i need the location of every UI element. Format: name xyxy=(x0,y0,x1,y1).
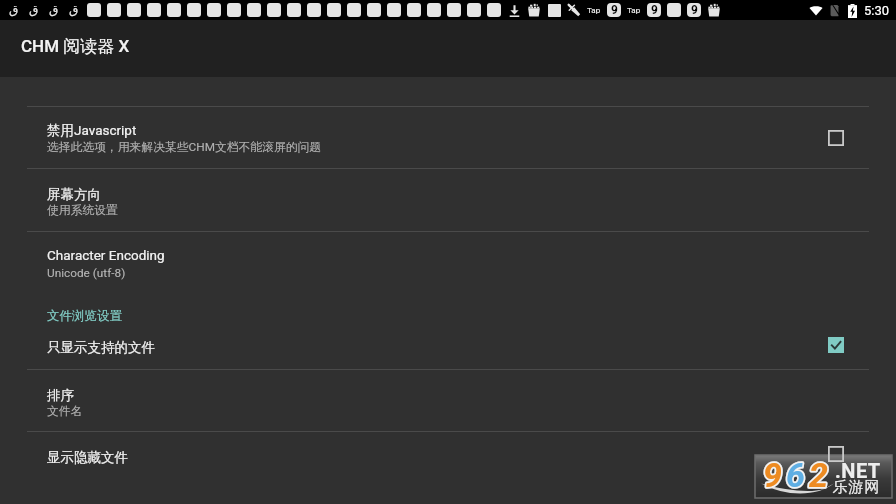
staticText: 2 xyxy=(809,455,828,495)
staticText: ق xyxy=(69,3,79,17)
staticText: 9 xyxy=(763,455,782,495)
staticText: Unicode (utf-8) xyxy=(47,266,126,280)
button[interactable]: 显示隐藏文件 xyxy=(0,432,896,482)
staticText: 选择此选项，用来解决某些CHM文档不能滚屏的问题 xyxy=(47,140,322,155)
button[interactable]: 只显示支持的文件 xyxy=(828,337,844,353)
button[interactable]: 排序 xyxy=(0,370,896,431)
staticText: Tap xyxy=(627,6,641,15)
staticText: ق xyxy=(49,3,59,17)
button[interactable]: 只显示支持的文件 xyxy=(0,331,896,369)
button[interactable]: 屏幕方向 xyxy=(0,169,896,231)
button[interactable]: Character Encoding xyxy=(0,232,896,291)
staticText: ق xyxy=(29,3,39,17)
staticText: 9 xyxy=(611,3,618,17)
staticText: 显示隐藏文件 xyxy=(47,449,128,466)
staticText: CHM 阅读器 X xyxy=(21,36,130,57)
staticText: ق xyxy=(9,3,19,17)
staticText: 屏幕方向 xyxy=(47,186,101,203)
staticText: 9 xyxy=(651,3,658,17)
staticText: 2 xyxy=(809,455,828,495)
staticText: 6 xyxy=(786,455,805,495)
staticText: .NET xyxy=(835,459,881,482)
button[interactable]: 显示隐藏文件 xyxy=(828,446,844,462)
staticText: 排序 xyxy=(47,387,74,404)
staticText: 9 xyxy=(691,3,698,17)
staticText: 9 xyxy=(763,455,782,495)
staticText: 文件浏览设置 xyxy=(47,308,122,324)
staticText: 使用系统设置 xyxy=(47,203,118,218)
staticText: Tap xyxy=(587,6,601,15)
staticText: 禁用Javascript xyxy=(47,122,137,139)
staticText: 只显示支持的文件 xyxy=(47,339,155,356)
staticText: Character Encoding xyxy=(47,247,165,263)
staticText: 乐游网 xyxy=(832,478,880,497)
button[interactable]: 禁用Javascript xyxy=(0,107,896,168)
button[interactable]: 禁用Javascript xyxy=(828,130,844,146)
staticText: 文件名 xyxy=(47,404,83,419)
staticText: 6 xyxy=(786,455,805,495)
staticText: 5:30 xyxy=(864,3,890,18)
